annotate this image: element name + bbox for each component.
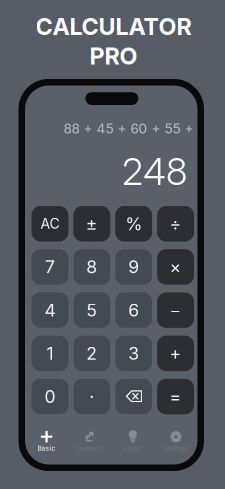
staticText: 4 <box>44 299 55 321</box>
staticText: Basic <box>38 444 56 452</box>
staticText: 0 <box>44 386 55 407</box>
staticText: PRO <box>89 42 137 70</box>
staticText: % <box>125 213 142 234</box>
staticText: 88 + 45 + 60 + 55 + <box>63 120 193 137</box>
staticText: AC <box>40 215 59 232</box>
staticText: ± <box>86 213 98 234</box>
button[interactable]: Convert <box>68 428 111 454</box>
button[interactable]: 0 <box>31 379 68 414</box>
button[interactable]: × <box>157 249 194 285</box>
button[interactable]: − <box>157 292 194 328</box>
button[interactable]: · <box>73 379 110 414</box>
button[interactable]: 3 <box>115 336 152 371</box>
staticText: Logic <box>124 444 142 452</box>
staticText: 8 <box>86 256 97 278</box>
staticText: · <box>89 386 94 407</box>
button[interactable]: 8 <box>73 249 110 285</box>
staticText: CALCULATOR <box>35 12 191 41</box>
button[interactable]: ÷ <box>157 206 194 241</box>
button[interactable]: ⌫ <box>115 379 152 414</box>
staticText: + <box>170 343 182 364</box>
button[interactable]: 2 <box>73 336 110 371</box>
staticText: Settings <box>163 444 189 452</box>
button[interactable]: 6 <box>115 292 152 328</box>
staticText: = <box>170 386 182 407</box>
button[interactable]: Settings <box>154 428 197 454</box>
staticText: 7 <box>45 256 55 278</box>
button[interactable]: 9 <box>115 249 152 285</box>
button[interactable]: 1 <box>31 336 68 371</box>
button[interactable]: Basic <box>25 428 68 454</box>
staticText: 1 <box>46 343 53 364</box>
button[interactable]: + <box>157 336 194 371</box>
staticText: 9 <box>128 256 139 278</box>
button[interactable]: % <box>115 206 152 241</box>
button[interactable]: ± <box>73 206 110 241</box>
button[interactable]: 7 <box>31 249 68 285</box>
button[interactable]: 5 <box>73 292 110 328</box>
staticText: 3 <box>128 343 139 364</box>
staticText: Convert <box>77 444 103 452</box>
staticText: ÷ <box>170 213 182 234</box>
staticText: ⌫ <box>124 387 143 406</box>
staticText: 248 <box>122 149 187 194</box>
staticText: × <box>170 256 182 278</box>
staticText: − <box>170 299 182 321</box>
button[interactable]: Logic <box>111 428 154 454</box>
button[interactable]: AC <box>31 206 68 241</box>
staticText: 6 <box>128 299 139 321</box>
staticText: 2 <box>86 343 97 364</box>
button[interactable]: = <box>157 379 194 414</box>
button[interactable]: 4 <box>31 292 68 328</box>
staticText: 5 <box>86 299 97 321</box>
